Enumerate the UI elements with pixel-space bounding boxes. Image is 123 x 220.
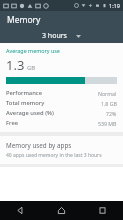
button[interactable]: Performance (6, 88, 117, 98)
button[interactable]: Memory used by apps (0, 136, 123, 164)
staticText: Average used (%) (6, 109, 54, 117)
button[interactable]: Total memory (6, 98, 117, 108)
button[interactable]: 3 hours (34, 29, 89, 43)
button[interactable]: Recent apps (82, 201, 123, 220)
staticText: Normal (98, 90, 117, 97)
staticText: 1.3 (6, 56, 25, 74)
staticText: Performance (6, 89, 42, 97)
button[interactable]: Home (41, 201, 82, 220)
staticText: Total memory (6, 99, 45, 107)
staticText: Memory used by apps (6, 141, 72, 150)
button[interactable]: Average used (%) (6, 108, 117, 118)
staticText: 3 hours (42, 31, 67, 41)
button[interactable]: Back (0, 201, 41, 220)
staticText: 72% (106, 110, 117, 117)
staticText: Free (6, 119, 19, 127)
staticText: 1.8 GB (101, 100, 117, 107)
staticText: Average memory use (6, 47, 60, 54)
staticText: 539 MB (98, 120, 117, 127)
staticText: 40 apps used memory in the last 3 hours (6, 152, 102, 159)
button[interactable]: Free (6, 118, 117, 128)
staticText: 1:19 (109, 2, 120, 9)
staticText: Memory (7, 14, 41, 26)
staticText: GB (27, 64, 36, 72)
